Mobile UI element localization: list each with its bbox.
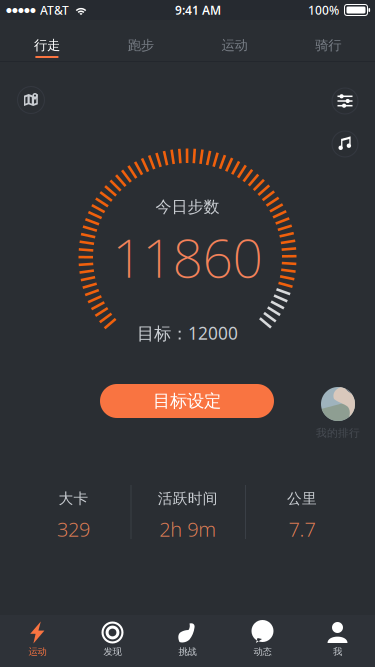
- staticText: 运动: [221, 37, 247, 53]
- staticText: 跑步: [128, 37, 154, 53]
- button[interactable]: Settings: [328, 84, 362, 118]
- button[interactable]: 挑战: [150, 615, 225, 667]
- button[interactable]: 发现: [75, 615, 150, 667]
- staticText: 目标设定: [153, 390, 221, 412]
- button[interactable]: 动态: [225, 615, 300, 667]
- staticText: 11860: [112, 222, 262, 292]
- button[interactable]: 我的排行: [306, 378, 370, 442]
- button[interactable]: 骑行: [281, 20, 375, 62]
- staticText: 骑行: [315, 37, 341, 53]
- button[interactable]: Music: [328, 127, 362, 161]
- staticText: 动态: [253, 646, 271, 657]
- staticText: ●●●●●: [6, 6, 36, 14]
- button[interactable]: 跑步: [94, 20, 188, 62]
- staticText: 发现: [103, 646, 121, 657]
- staticText: 挑战: [178, 646, 196, 657]
- staticText: 100%: [308, 2, 339, 18]
- staticText: 活跃时间: [158, 490, 218, 508]
- button[interactable]: 运动: [187, 20, 281, 62]
- staticText: 行走: [34, 37, 60, 53]
- staticText: 我: [333, 646, 342, 657]
- staticText: 329: [57, 516, 90, 542]
- staticText: 7.7: [288, 516, 315, 542]
- button[interactable]: 运动: [0, 615, 75, 667]
- button[interactable]: 我: [300, 615, 375, 667]
- button[interactable]: Map: [14, 83, 48, 117]
- staticText: 公里: [287, 490, 317, 508]
- staticText: 大卡: [58, 490, 88, 508]
- staticText: AT&T: [40, 2, 69, 18]
- staticText: 2h 9m: [159, 516, 216, 542]
- button[interactable]: 目标设定: [100, 384, 274, 418]
- staticText: 今日步数: [155, 197, 219, 217]
- button[interactable]: 行走: [0, 20, 94, 62]
- staticText: 我的排行: [316, 426, 360, 439]
- staticText: 运动: [28, 646, 46, 657]
- staticText: 目标：12000: [137, 321, 238, 344]
- staticText: 9:41 AM: [175, 2, 221, 18]
